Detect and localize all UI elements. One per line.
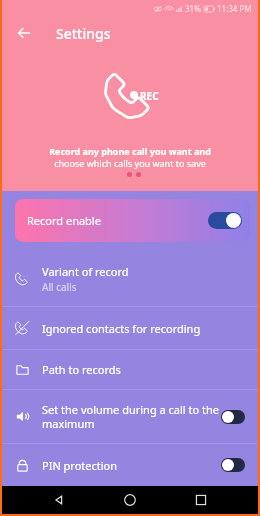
button[interactable]: Path to records: [2, 350, 258, 389]
staticText: Record enable: [27, 213, 101, 228]
button[interactable]: Ignored contacts for recording: [2, 307, 258, 349]
staticText: Set the volume during a call to the maxi…: [42, 402, 219, 431]
staticText: Variant of record: [42, 264, 129, 279]
button[interactable]: Home: [116, 486, 144, 514]
button[interactable]: Back: [12, 21, 36, 45]
staticText: Ignored contacts for recording: [42, 321, 201, 336]
staticText: Path to records: [42, 362, 121, 377]
staticText: 11:34 PM: [217, 3, 252, 14]
button[interactable]: Record enable: [15, 199, 250, 242]
button[interactable]: Variant of record: [2, 252, 258, 306]
staticText: choose which calls you want to save: [2, 157, 258, 169]
staticText: All calls: [42, 280, 77, 294]
staticText: Settings: [56, 24, 111, 43]
button[interactable]: Back: [45, 486, 73, 514]
staticText: Record any phone call you want and: [2, 145, 258, 157]
button[interactable]: PIN protection: [2, 444, 258, 486]
staticText: 31%: [185, 3, 201, 14]
staticText: PIN protection: [42, 458, 118, 473]
button[interactable]: Set the volume during a call to the maxi…: [2, 390, 258, 443]
button[interactable]: Recents: [187, 486, 215, 514]
staticText: REC: [140, 89, 159, 103]
